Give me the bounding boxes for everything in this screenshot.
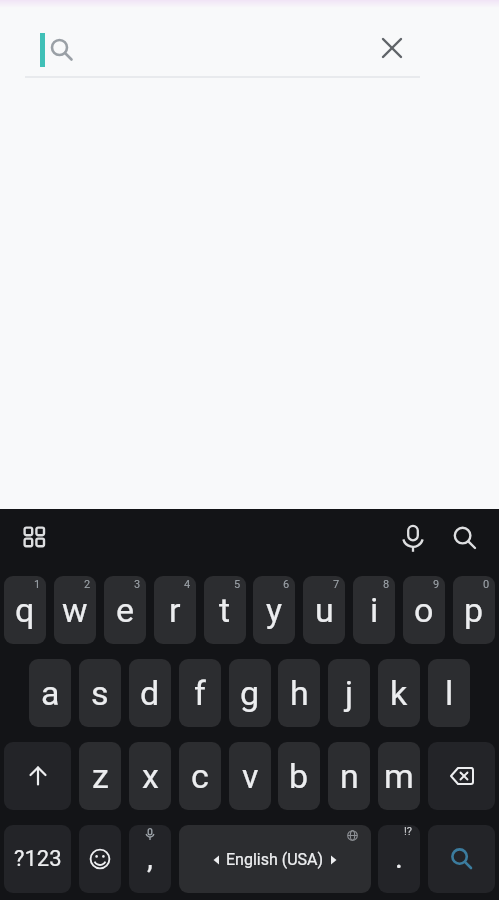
button[interactable]: ?123 bbox=[4, 825, 71, 893]
button[interactable] bbox=[13, 517, 55, 557]
staticText: 0 bbox=[483, 578, 490, 591]
button[interactable]: o bbox=[403, 576, 445, 644]
staticText: 4 bbox=[184, 578, 191, 591]
staticText: ?123 bbox=[14, 846, 62, 872]
staticText: d bbox=[140, 673, 160, 713]
staticText: j bbox=[345, 673, 354, 713]
staticText: a bbox=[41, 673, 60, 713]
staticText: e bbox=[116, 590, 135, 630]
button[interactable]: p bbox=[453, 576, 495, 644]
button[interactable]: h bbox=[278, 659, 320, 727]
button[interactable]: i bbox=[353, 576, 395, 644]
button[interactable]: e bbox=[104, 576, 146, 644]
staticText: 6 bbox=[283, 578, 290, 591]
staticText: i bbox=[370, 590, 379, 630]
staticText: u bbox=[315, 590, 334, 630]
button[interactable]: b bbox=[278, 742, 320, 810]
button[interactable] bbox=[392, 517, 434, 561]
staticText: h bbox=[290, 673, 309, 713]
staticText: 5 bbox=[234, 578, 241, 591]
button[interactable]: n bbox=[328, 742, 370, 810]
staticText: . bbox=[395, 840, 403, 875]
button[interactable]: g bbox=[229, 659, 271, 727]
staticText: 2 bbox=[84, 578, 91, 591]
button[interactable]: k bbox=[378, 659, 420, 727]
staticText: w bbox=[62, 590, 88, 630]
staticText: m bbox=[384, 756, 414, 796]
staticText: English (USA) bbox=[226, 850, 324, 869]
staticText: g bbox=[240, 673, 260, 713]
staticText: r bbox=[169, 590, 181, 630]
button[interactable]: English (USA) bbox=[179, 825, 371, 893]
staticText: f bbox=[194, 673, 206, 713]
button[interactable]: s bbox=[79, 659, 121, 727]
staticText: z bbox=[92, 756, 109, 796]
button[interactable] bbox=[372, 28, 412, 68]
button[interactable] bbox=[428, 825, 495, 893]
staticText: v bbox=[242, 756, 259, 796]
staticText: c bbox=[191, 756, 209, 796]
staticText: 7 bbox=[333, 578, 340, 591]
staticText: !? bbox=[404, 825, 413, 838]
button[interactable] bbox=[428, 742, 495, 810]
staticText: b bbox=[289, 756, 309, 796]
staticText: y bbox=[266, 590, 283, 630]
button[interactable]: r bbox=[154, 576, 196, 644]
button[interactable]: q bbox=[4, 576, 46, 644]
staticText: q bbox=[15, 590, 35, 630]
button[interactable]: , bbox=[129, 825, 171, 893]
staticText: x bbox=[142, 756, 159, 796]
staticText: p bbox=[464, 590, 484, 630]
button[interactable]: m bbox=[378, 742, 420, 810]
button[interactable]: f bbox=[179, 659, 221, 727]
button[interactable]: v bbox=[229, 742, 271, 810]
button[interactable]: l bbox=[428, 659, 470, 727]
staticText: 8 bbox=[383, 578, 390, 591]
button[interactable] bbox=[443, 517, 487, 559]
button[interactable]: . bbox=[378, 825, 420, 893]
staticText: t bbox=[219, 590, 231, 630]
staticText: 1 bbox=[34, 578, 41, 591]
button[interactable]: c bbox=[179, 742, 221, 810]
button[interactable]: t bbox=[204, 576, 246, 644]
button[interactable]: u bbox=[303, 576, 345, 644]
staticText: o bbox=[414, 590, 434, 630]
button[interactable] bbox=[4, 742, 71, 810]
button[interactable]: d bbox=[129, 659, 171, 727]
button[interactable]: w bbox=[54, 576, 96, 644]
staticText: 3 bbox=[134, 578, 141, 591]
staticText: l bbox=[445, 673, 454, 713]
staticText: k bbox=[390, 673, 408, 713]
button[interactable]: j bbox=[328, 659, 370, 727]
button[interactable]: z bbox=[79, 742, 121, 810]
button[interactable] bbox=[79, 825, 121, 893]
staticText: , bbox=[147, 840, 153, 875]
staticText: 9 bbox=[433, 578, 440, 591]
staticText: n bbox=[340, 756, 359, 796]
button[interactable]: x bbox=[129, 742, 171, 810]
staticText: s bbox=[91, 673, 109, 713]
button[interactable]: y bbox=[253, 576, 295, 644]
button[interactable]: a bbox=[29, 659, 71, 727]
